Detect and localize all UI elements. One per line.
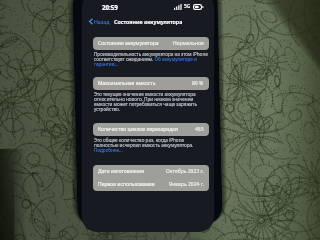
staticText: Количество циклов перезарядки bbox=[98, 126, 178, 133]
button[interactable]: Дата изготовления bbox=[93, 165, 209, 178]
staticText: 465 bbox=[195, 126, 204, 133]
staticText: 20:59 bbox=[102, 3, 118, 11]
button[interactable]: Первое использование bbox=[93, 178, 209, 191]
staticText: Состояние аккумулятора bbox=[114, 18, 183, 25]
staticText: Нормальное bbox=[173, 40, 204, 47]
staticText: Максимальная емкость bbox=[98, 80, 156, 87]
staticText: Состояние аккумулятора bbox=[98, 40, 159, 47]
staticText: 80 % bbox=[192, 80, 204, 87]
staticText: Назад bbox=[94, 18, 110, 25]
button[interactable]: Количество циклов перезарядки bbox=[93, 123, 209, 136]
staticText: Первое использование bbox=[98, 181, 155, 188]
staticText: Январь 2024 г. bbox=[169, 181, 204, 188]
button[interactable]: Назад bbox=[88, 18, 111, 25]
staticText: Октябрь 2023 г. bbox=[166, 168, 204, 175]
button[interactable]: Максимальная емкость bbox=[93, 77, 209, 90]
staticText: Производительность аккумулятора на этом … bbox=[94, 51, 208, 67]
staticText: 5G bbox=[184, 3, 191, 10]
button[interactable]: Состояние аккумулятора bbox=[93, 37, 209, 50]
staticText: Дата изготовления bbox=[98, 168, 145, 175]
staticText: Это общее количество раз, когда iPhone п… bbox=[94, 137, 208, 153]
staticText: Это текущее значение емкости аккумулятор… bbox=[94, 91, 208, 112]
